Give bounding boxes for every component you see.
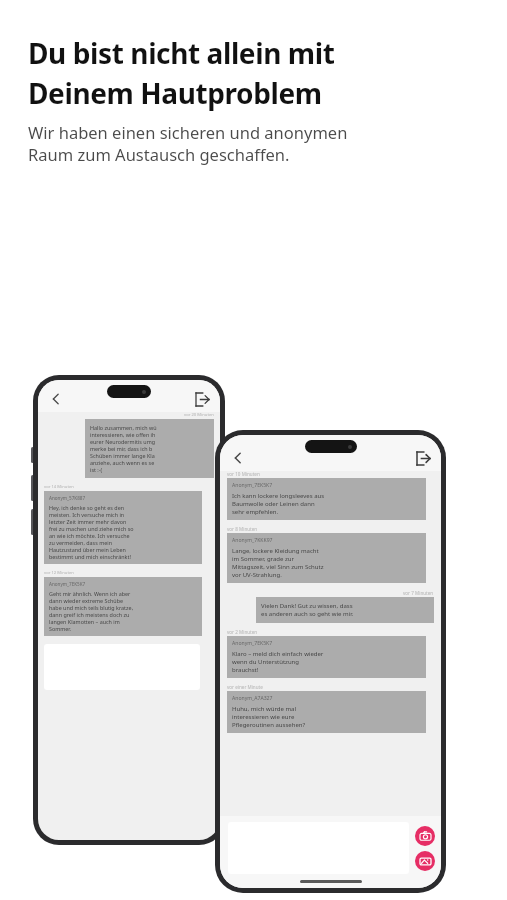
staticText: Anonym_7KKK97 — [232, 537, 273, 544]
staticText: Baumwolle oder Leinen dann — [232, 500, 315, 508]
button[interactable]: Bild senden — [415, 851, 435, 871]
button[interactable]: Anonym_A7A327 — [227, 691, 426, 733]
button[interactable]: Zurück — [229, 449, 247, 467]
staticText: Mittagszeit, viel Sinn zum Schutz — [232, 563, 324, 571]
staticText: vor 20 Minuten — [184, 412, 214, 418]
button[interactable]: Vielen Dank! Gut zu wissen, dass — [256, 597, 434, 623]
staticText: dann greif ich meistens doch zu — [49, 611, 130, 618]
staticText: langen Klamotten – auch im — [49, 618, 120, 625]
staticText: Anonym_57K887 — [49, 495, 86, 501]
staticText: vor 10 Minuten — [227, 471, 260, 477]
staticText: Anonym_7EK5K7 — [232, 482, 273, 489]
button[interactable]: Anonym_7EK5K7 — [227, 478, 426, 520]
staticText: Hallo zusammen, mich wü — [90, 424, 157, 431]
staticText: Du bist nicht allein mit — [28, 34, 335, 72]
staticText: interessieren wie eure — [232, 713, 295, 721]
button[interactable]: Anonym_7EK5K7 — [44, 577, 202, 636]
staticText: habe und mich teils blutig kratze, — [49, 604, 134, 611]
staticText: Lange, lockere Kleidung macht — [232, 547, 319, 555]
staticText: merke bei mir, dass ich b — [90, 445, 153, 452]
staticText: Anonym_7EK5K7 — [49, 581, 86, 587]
staticText: meisten. Ich versuche mich in — [49, 511, 125, 518]
staticText: eurer Neurodermitis umg — [90, 438, 156, 445]
staticText: Anonym_7EK5K7 — [232, 640, 273, 647]
staticText: Ich kann lockere longsleeves aus — [232, 492, 325, 500]
button[interactable]: Chat verlassen — [193, 390, 211, 408]
staticText: letzter Zeit immer mehr davon — [49, 518, 127, 525]
staticText: frei zu machen und ziehe mich so — [49, 525, 134, 532]
staticText: Vielen Dank! Gut zu wissen, dass — [261, 602, 353, 610]
staticText: brauchst! — [232, 666, 259, 674]
staticText: vor 12 Minuten — [44, 570, 74, 576]
button[interactable]: Anonym_7KKK97 — [227, 533, 426, 583]
staticText: Raum zum Austausch geschaffen. — [28, 143, 290, 165]
staticText: es anderen auch so geht wie mir. — [261, 610, 354, 618]
staticText: Hey, ich denke so geht es den — [49, 504, 125, 511]
staticText: vor UV-Strahlung. — [232, 571, 282, 579]
staticText: interessieren, wie offen ih — [90, 431, 156, 438]
button[interactable]: Anonym_57K887 — [44, 491, 202, 564]
staticText: Geht mir ähnlich. Wenn ich aber — [49, 590, 131, 597]
button[interactable]: Zurück — [47, 390, 65, 408]
button[interactable]: Chat verlassen — [414, 449, 432, 467]
staticText: wenn du Unterstützung — [232, 658, 299, 666]
staticText: vor 2 Minuten — [227, 629, 258, 635]
staticText: zu vermeiden, dass mein — [49, 539, 112, 546]
staticText: Anonym_A7A327 — [232, 695, 273, 702]
staticText: vor 8 Minuten — [227, 526, 258, 532]
staticText: vor einer Minute — [227, 684, 263, 690]
button[interactable]: Hallo zusammen, mich wü — [85, 419, 214, 478]
staticText: Klaro – meld dich einfach wieder — [232, 650, 324, 658]
staticText: sehr empfehlen. — [232, 508, 279, 516]
staticText: anziehe, auch wenn es se — [90, 459, 155, 466]
staticText: vor 7 Minuten — [403, 590, 434, 596]
staticText: im Sommer, grade zur — [232, 555, 294, 563]
staticText: Schüben immer lange Kla — [90, 452, 155, 459]
button[interactable]: Anonym_7EK5K7 — [227, 636, 426, 678]
staticText: ist :-( — [90, 466, 103, 473]
staticText: Deinem Hautproblem — [28, 74, 322, 112]
staticText: Wir haben einen sicheren und anonymen — [28, 121, 348, 143]
staticText: Hautzustand über mein Leben — [49, 546, 126, 553]
staticText: Sommer. — [49, 625, 72, 632]
button[interactable]: Foto aufnehmen — [415, 826, 435, 846]
staticText: dann wieder extreme Schübe — [49, 597, 123, 604]
staticText: vor 14 Minuten — [44, 484, 74, 490]
staticText: Pflegeroutinen aussehen? — [232, 721, 306, 729]
staticText: bestimmt und mich einschränkt! — [49, 553, 131, 560]
staticText: Huhu, mich würde mal — [232, 705, 296, 713]
staticText: an wie ich möchte. Ich versuche — [49, 532, 130, 539]
